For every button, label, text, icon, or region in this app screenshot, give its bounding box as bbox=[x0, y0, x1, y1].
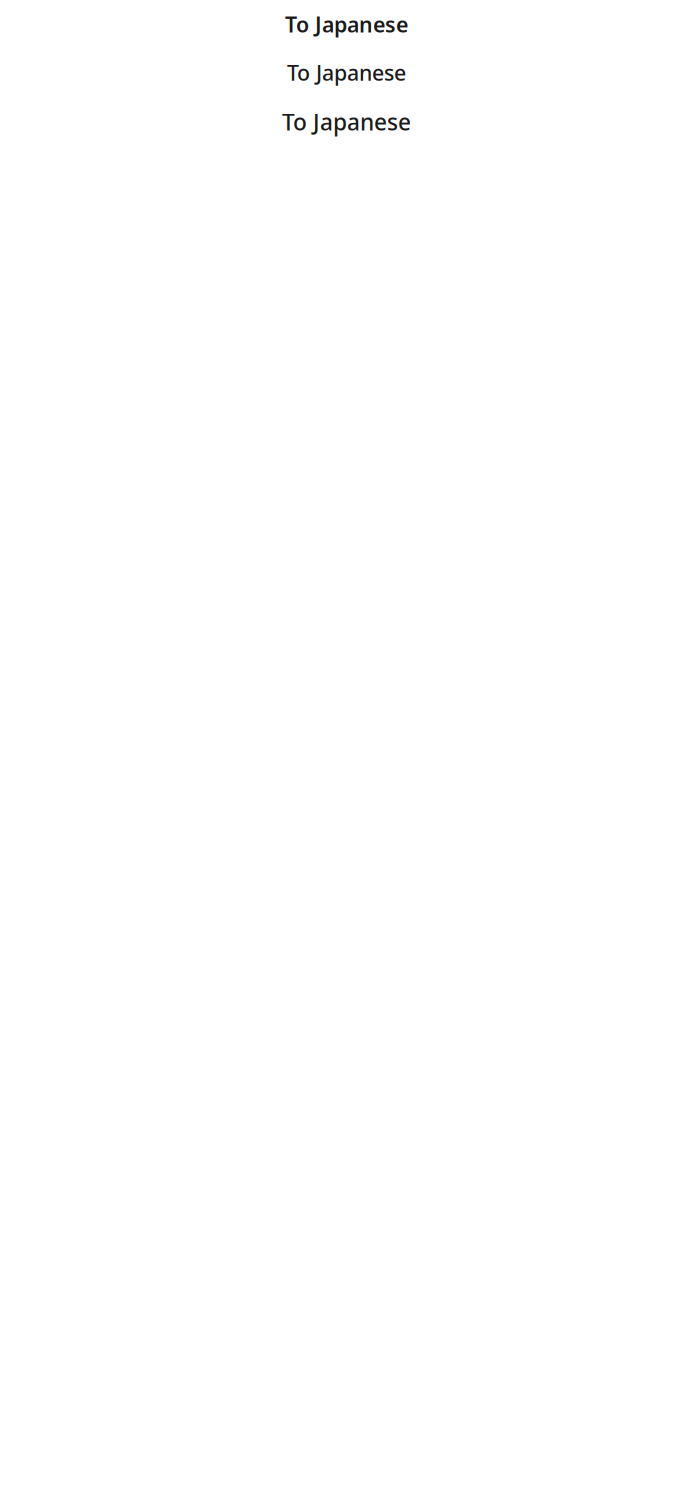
staticText: To Japanese bbox=[285, 10, 408, 38]
staticText: To Japanese bbox=[287, 58, 406, 87]
staticText: To Japanese bbox=[282, 107, 411, 137]
